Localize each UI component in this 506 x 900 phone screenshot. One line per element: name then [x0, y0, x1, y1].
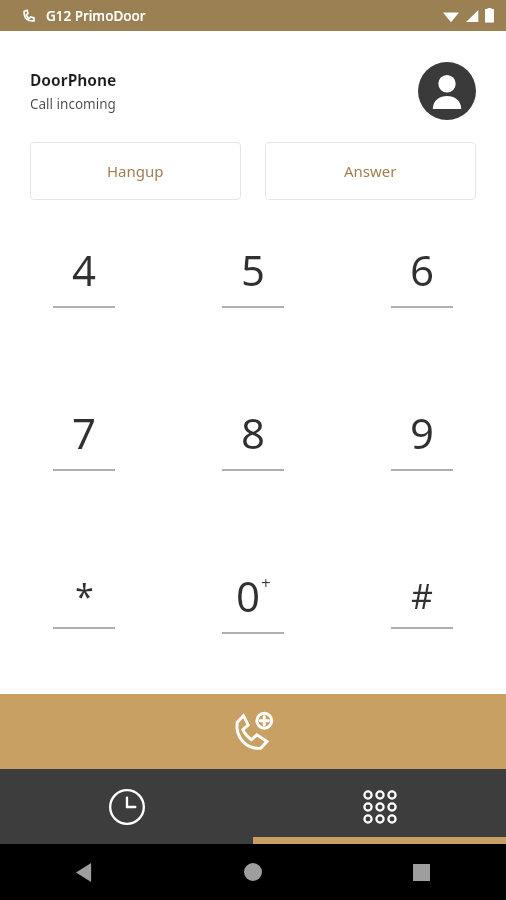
button[interactable]: 7: [0, 356, 168, 519]
button[interactable]: [0, 31, 168, 193]
button[interactable]: 6: [337, 193, 506, 356]
staticText: 8: [241, 404, 266, 461]
button[interactable]: 5: [168, 193, 337, 356]
staticText: #: [411, 573, 433, 619]
button[interactable]: 4: [0, 193, 168, 356]
button[interactable]: Recents: [337, 844, 506, 900]
staticText: 5: [241, 241, 266, 298]
staticText: +: [261, 571, 271, 594]
button[interactable]: 0: [168, 519, 337, 682]
staticText: 0: [236, 567, 261, 624]
staticText: G12 PrimoDoor: [46, 7, 146, 25]
button[interactable]: Recent calls: [0, 769, 253, 844]
button[interactable]: [337, 31, 506, 193]
button[interactable]: 9: [337, 356, 506, 519]
staticText: 4: [72, 241, 97, 298]
button[interactable]: Hangup: [30, 142, 241, 200]
button[interactable]: Add call: [0, 694, 506, 769]
staticText: 9: [410, 404, 435, 461]
button[interactable]: 8: [168, 356, 337, 519]
button[interactable]: Answer: [265, 142, 476, 200]
staticText: DoorPhone: [30, 69, 117, 90]
button[interactable]: Back: [0, 844, 168, 900]
button[interactable]: Dialpad: [253, 769, 506, 844]
staticText: *: [75, 573, 94, 619]
staticText: Answer: [344, 161, 397, 181]
staticText: 6: [410, 241, 435, 298]
button[interactable]: Home: [168, 844, 337, 900]
other: Caller avatar: [418, 62, 476, 120]
staticText: Call incoming: [30, 95, 116, 113]
staticText: 7: [72, 404, 97, 461]
staticText: Hangup: [107, 161, 164, 181]
button[interactable]: *: [0, 519, 168, 682]
button[interactable]: #: [337, 519, 506, 682]
